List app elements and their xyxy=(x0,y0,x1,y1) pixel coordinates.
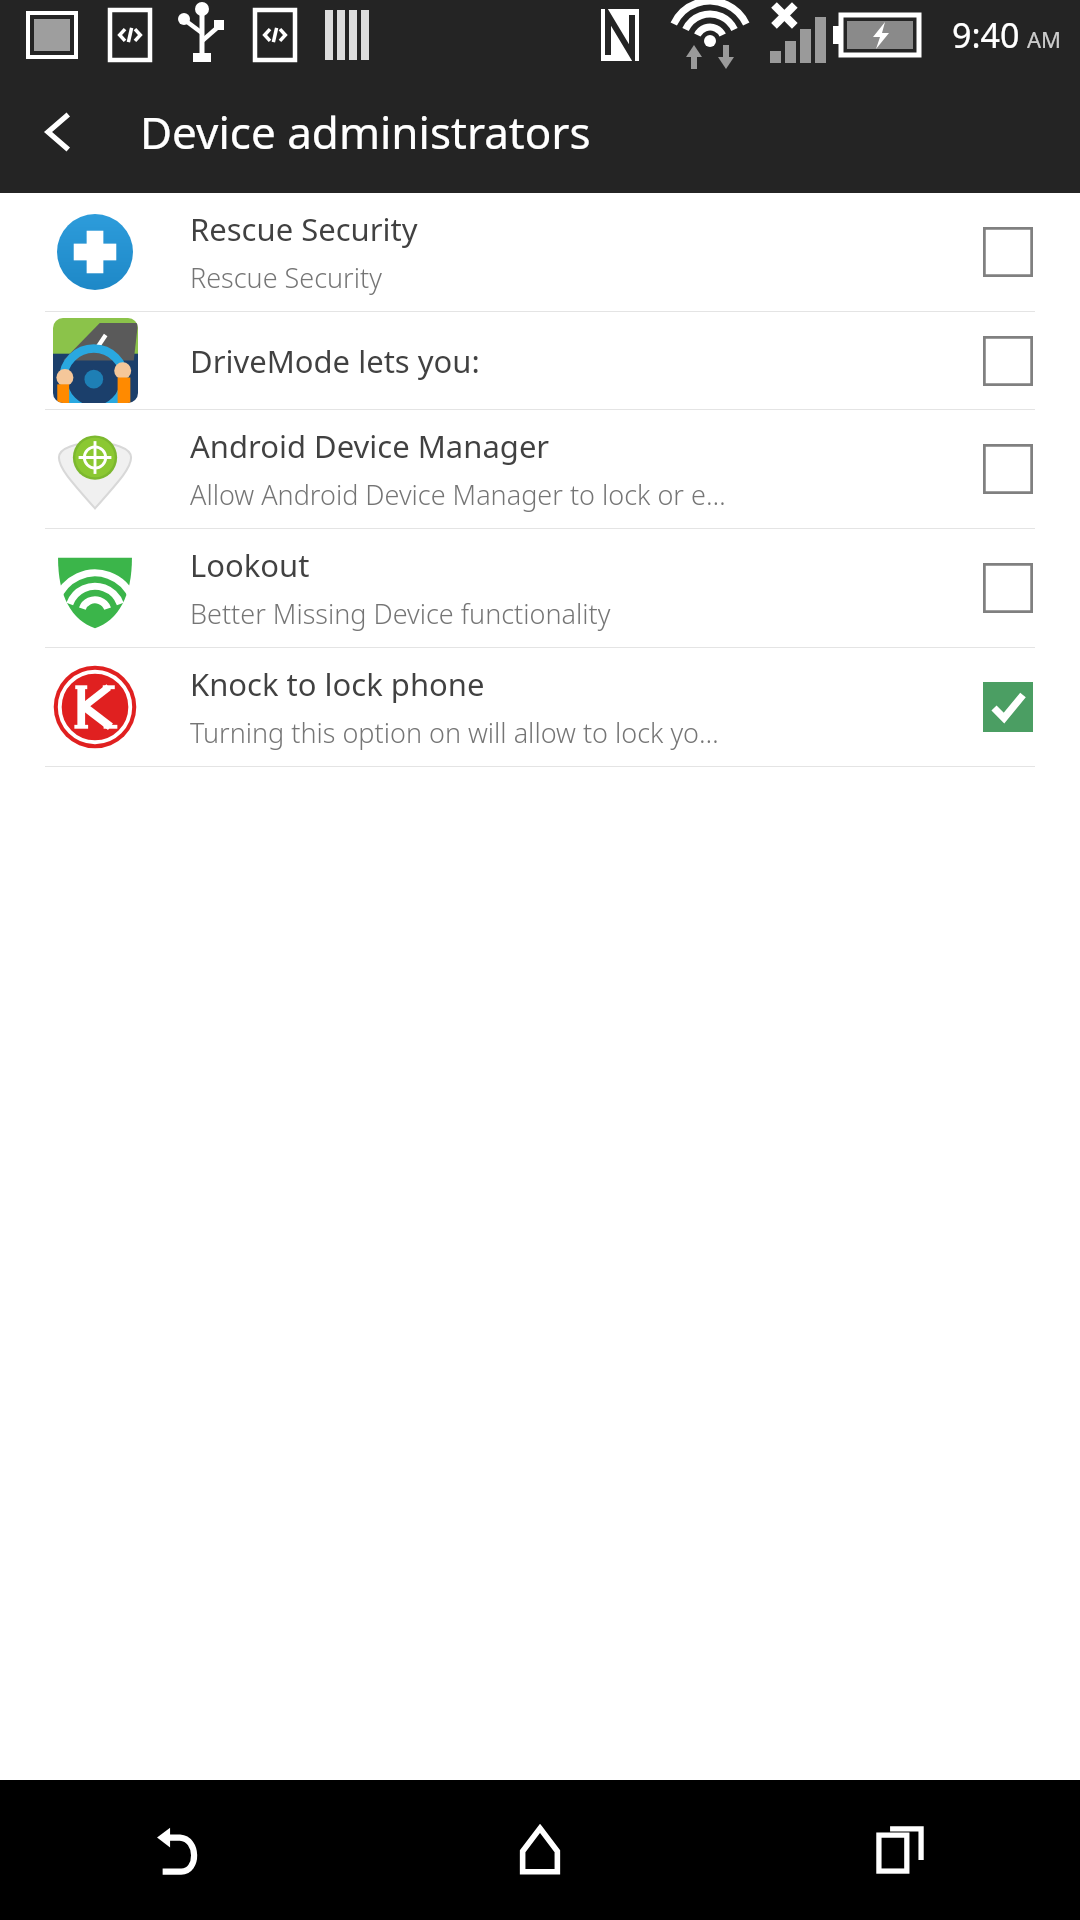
button[interactable]: Knock to lock phone xyxy=(0,648,1080,766)
button[interactable]: Recents xyxy=(720,1780,1080,1920)
button[interactable]: Android Device Manager xyxy=(0,410,1080,528)
staticText: Turning this option on will allow to loc… xyxy=(190,714,719,751)
button[interactable]: Disabled xyxy=(935,529,1080,647)
button[interactable]: Enabled xyxy=(935,648,1080,766)
button[interactable]: Back xyxy=(0,1780,360,1920)
staticText: Rescue Security xyxy=(190,208,418,250)
staticText: Device administrators xyxy=(140,102,591,162)
button[interactable]: Home xyxy=(360,1780,720,1920)
staticText: Lookout xyxy=(190,544,310,586)
staticText: DriveMode lets you: xyxy=(190,340,480,382)
staticText: AM xyxy=(1027,24,1062,54)
button[interactable]: Rescue Security xyxy=(0,193,1080,311)
button[interactable]: Lookout xyxy=(0,529,1080,647)
button[interactable]: Disabled xyxy=(935,410,1080,528)
button[interactable]: Disabled xyxy=(935,193,1080,311)
staticText: Knock to lock phone xyxy=(190,663,485,705)
staticText: 9:40 xyxy=(952,12,1020,58)
button[interactable]: Disabled xyxy=(935,312,1080,409)
staticText: Better Missing Device functionality xyxy=(190,595,611,632)
staticText: Rescue Security xyxy=(190,259,382,296)
staticText: Android Device Manager xyxy=(190,425,550,467)
staticText: Allow Android Device Manager to lock or … xyxy=(190,476,726,513)
button[interactable]: DriveMode lets you: xyxy=(0,312,1080,409)
button[interactable]: Back xyxy=(22,94,98,170)
